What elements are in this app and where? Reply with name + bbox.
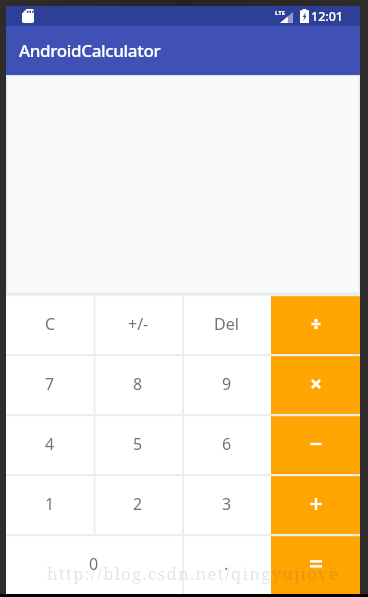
staticText: Del <box>214 313 239 335</box>
button[interactable]: 4 <box>6 414 94 474</box>
button[interactable]: Multiply <box>271 354 360 414</box>
button[interactable]: Divide <box>271 294 360 354</box>
staticText: . <box>224 553 229 575</box>
button[interactable]: 8 <box>94 354 182 414</box>
button[interactable]: Subtract <box>271 414 360 474</box>
staticText: http://blog.csdn.net/qingyujiove <box>47 562 340 584</box>
staticText: 3 <box>222 493 232 515</box>
button[interactable]: 5 <box>94 414 182 474</box>
button[interactable]: 6 <box>182 414 271 474</box>
button[interactable]: 1 <box>6 474 94 534</box>
button[interactable]: Add <box>271 474 360 534</box>
staticText: 5 <box>133 433 143 455</box>
button[interactable]: 7 <box>6 354 94 414</box>
staticText: C <box>45 313 56 335</box>
button[interactable]: 0 <box>6 534 182 594</box>
staticText: AndroidCalculator <box>19 39 161 62</box>
staticText: 9 <box>222 373 232 395</box>
button[interactable]: 9 <box>182 354 271 414</box>
staticText: LTE <box>275 9 286 17</box>
button[interactable]: +/- <box>94 294 182 354</box>
staticText: 2 <box>133 493 143 515</box>
staticText: 4 <box>45 433 55 455</box>
staticText: 8 <box>133 373 143 395</box>
button[interactable]: 3 <box>182 474 271 534</box>
button[interactable]: 2 <box>94 474 182 534</box>
staticText: 1 <box>45 493 55 515</box>
button[interactable]: . <box>182 534 271 594</box>
button[interactable]: Del <box>182 294 271 354</box>
staticText: 7 <box>45 373 55 395</box>
staticText: +/- <box>128 313 149 335</box>
button[interactable]: Equals <box>271 534 360 594</box>
button[interactable]: C <box>6 294 94 354</box>
staticText: 12:01 <box>311 8 344 25</box>
staticText: 6 <box>222 433 232 455</box>
staticText: 0 <box>89 553 99 575</box>
